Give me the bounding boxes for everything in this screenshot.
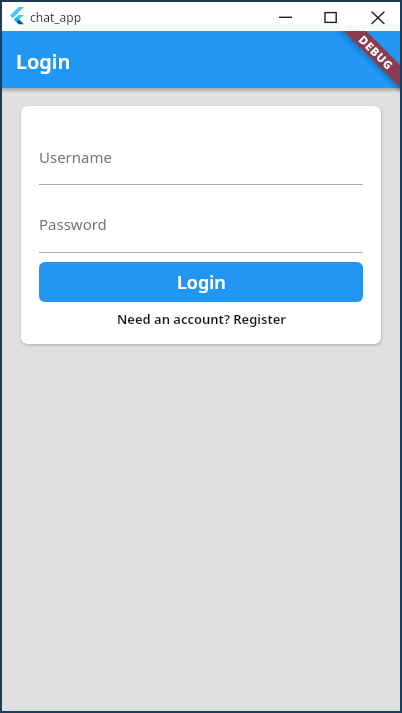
staticText: Login xyxy=(16,48,71,75)
staticText: Username xyxy=(39,147,112,167)
button[interactable]: Need an account? Register xyxy=(39,310,363,328)
staticText: Need an account? Register xyxy=(117,310,286,328)
button[interactable]: Login xyxy=(39,262,363,302)
staticText: Login xyxy=(177,270,226,295)
staticText: Password xyxy=(39,214,107,234)
staticText: chat_app xyxy=(30,9,82,25)
